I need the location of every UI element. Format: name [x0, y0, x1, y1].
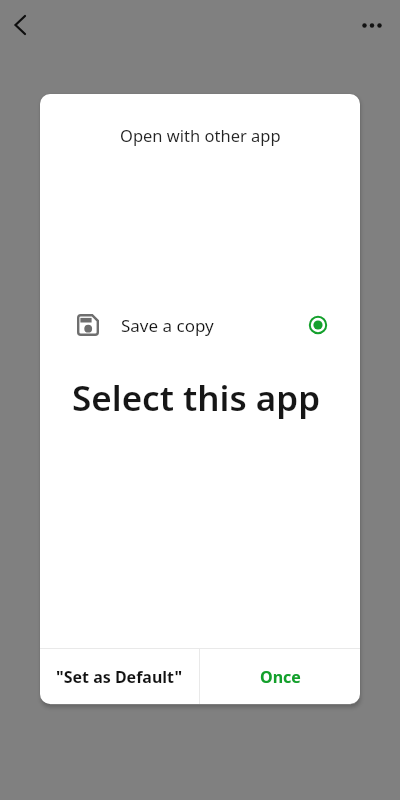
staticText: Open with other app	[120, 124, 281, 146]
button[interactable]: "Set as Default"	[40, 649, 199, 704]
button[interactable]	[4, 9, 36, 41]
button[interactable]	[358, 11, 386, 39]
staticText: Save a copy	[121, 314, 214, 337]
staticText: "Set as Default"	[56, 666, 183, 688]
button[interactable]: Save a copy	[40, 301, 360, 349]
staticText: Once	[260, 666, 301, 688]
button[interactable]: Once	[200, 649, 360, 704]
staticText: Select this app	[72, 374, 321, 422]
